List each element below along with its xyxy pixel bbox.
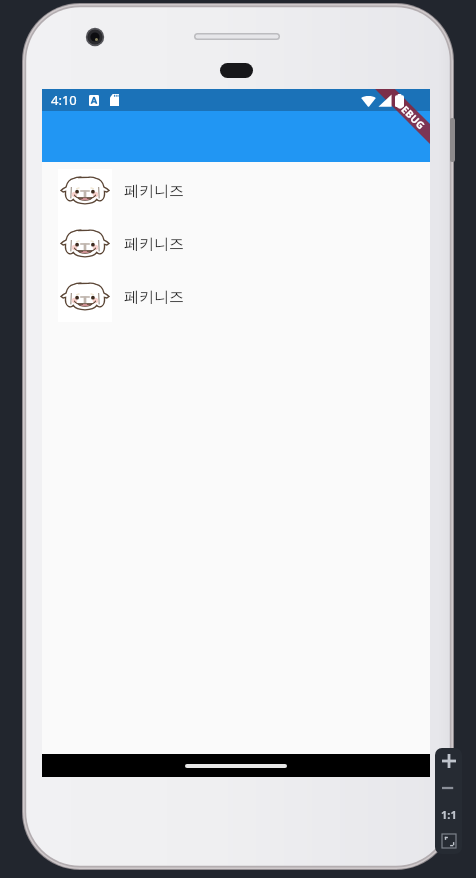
button[interactable]: Zoom in: [436, 748, 462, 774]
button[interactable]: 1:1: [436, 801, 462, 827]
staticText: 페키니즈: [124, 235, 184, 254]
button[interactable]: 페키니즈: [42, 214, 430, 267]
staticText: 4:10: [51, 91, 77, 109]
button[interactable]: Fit to screen: [436, 828, 462, 854]
button[interactable]: 페키니즈: [42, 267, 430, 320]
staticText: 1:1: [441, 807, 457, 822]
staticText: 페키니즈: [124, 288, 184, 307]
button[interactable]: 페키니즈: [42, 161, 430, 214]
staticText: 페키니즈: [124, 182, 184, 201]
button[interactable]: Zoom out: [436, 775, 462, 801]
staticText: DEBUG: [393, 97, 428, 132]
